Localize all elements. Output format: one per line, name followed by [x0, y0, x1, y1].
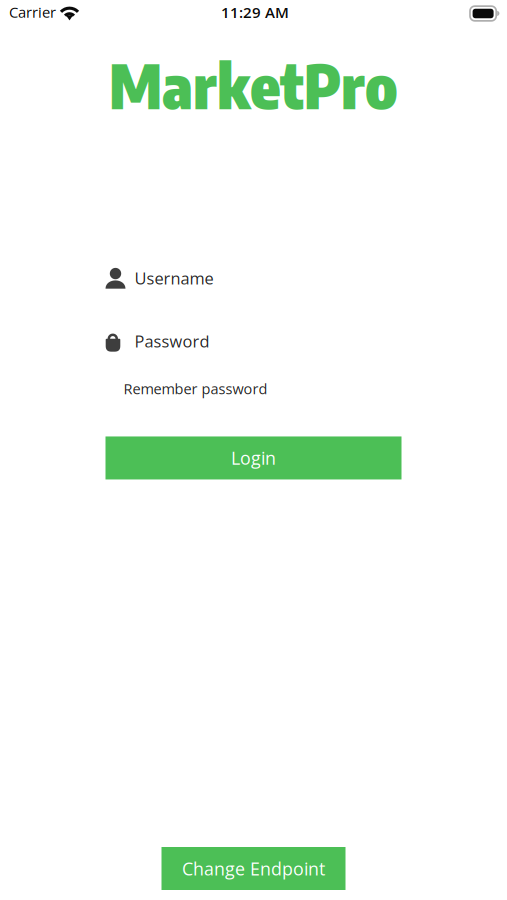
button[interactable]: Login: [105, 436, 401, 479]
button[interactable]: Change Endpoint: [161, 847, 345, 890]
staticText: Password: [134, 330, 209, 352]
staticText: Remember password: [123, 379, 267, 398]
staticText: Change Endpoint: [182, 856, 325, 881]
staticText: MarketPro: [109, 46, 398, 123]
staticText: Username: [134, 267, 213, 289]
staticText: 11:29 AM: [221, 2, 289, 22]
staticText: Login: [231, 446, 276, 470]
staticText: Carrier: [9, 2, 56, 22]
